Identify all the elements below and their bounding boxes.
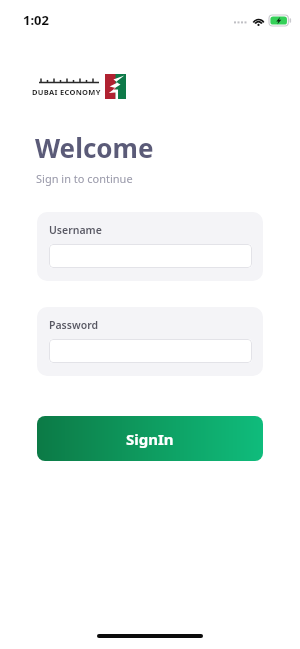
button[interactable]	[49, 244, 252, 268]
staticText: 1:02	[23, 11, 49, 29]
staticText: Password	[49, 318, 99, 332]
button[interactable]: Password	[37, 307, 263, 376]
staticText: DUBAI ECONOMY	[32, 87, 101, 97]
staticText: SignIn	[126, 429, 174, 449]
button[interactable]: Username	[37, 212, 263, 281]
staticText: Welcome	[35, 130, 154, 165]
button[interactable]: SignIn	[37, 416, 263, 461]
staticText: Sign in to continue	[36, 171, 133, 186]
button[interactable]	[49, 339, 252, 363]
staticText: Username	[49, 223, 102, 237]
